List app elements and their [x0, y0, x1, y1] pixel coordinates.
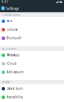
button[interactable]: Data & Tools	[0, 84, 64, 93]
staticText: Cellular	[7, 28, 18, 31]
button[interactable]: Add account	[0, 68, 64, 76]
staticText: Settings	[6, 6, 19, 11]
button[interactable]: iCloud	[0, 59, 64, 68]
staticText: SYSTEM	[2, 80, 10, 84]
staticText: Data & Tools	[7, 87, 23, 90]
button[interactable]: Bluetooth	[0, 34, 64, 42]
staticText: iCloud	[7, 62, 17, 65]
staticText: ACCOUNTS	[2, 47, 16, 50]
staticText: Add account	[7, 70, 24, 74]
staticText: Wi-Fi	[7, 19, 13, 23]
button[interactable]: Wi-Fi	[0, 17, 64, 25]
button[interactable]: Cellular	[0, 25, 64, 34]
button[interactable]: Accessibility	[0, 93, 64, 101]
staticText: CONNECTIONS	[2, 13, 20, 16]
staticText: WhatsApp	[7, 53, 20, 57]
staticText: Bluetooth	[7, 36, 22, 40]
button[interactable]: WhatsApp	[0, 51, 64, 59]
staticText: Accessibility	[7, 95, 23, 99]
staticText: 9:41	[2, 0, 9, 4]
